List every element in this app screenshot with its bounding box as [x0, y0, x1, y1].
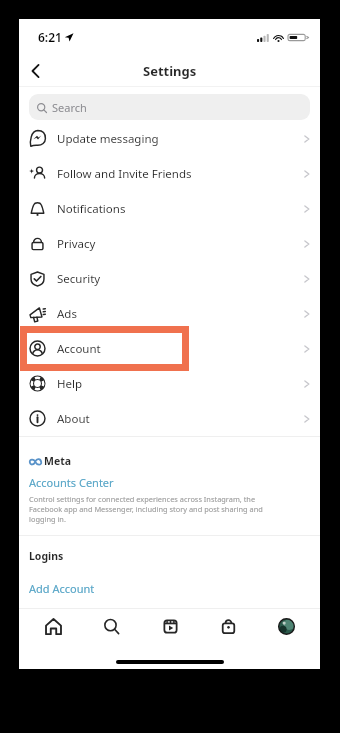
- staticText: Account: [57, 341, 101, 357]
- staticText: Control settings for connected experienc…: [29, 494, 286, 524]
- staticText: Update messaging: [57, 131, 159, 147]
- button[interactable]: Help: [19, 366, 320, 401]
- staticText: Logins: [29, 549, 64, 563]
- staticText: Follow and Invite Friends: [57, 166, 192, 182]
- staticText: About: [57, 411, 90, 427]
- staticText: Help: [57, 376, 83, 392]
- staticText: Search: [52, 100, 87, 115]
- button[interactable]: Search: [29, 94, 310, 120]
- button[interactable]: Follow and Invite Friends: [19, 156, 320, 191]
- button[interactable]: Back: [19, 55, 53, 86]
- button[interactable]: Ads: [19, 296, 320, 331]
- staticText: Settings: [143, 62, 197, 80]
- staticText: Meta: [44, 454, 72, 468]
- staticText: 6:21: [38, 29, 62, 45]
- staticText: Security: [57, 271, 101, 287]
- button[interactable]: Home: [29, 609, 77, 644]
- button[interactable]: About: [19, 401, 320, 436]
- button[interactable]: Account: [19, 331, 320, 366]
- button[interactable]: Reels: [146, 609, 194, 644]
- button[interactable]: Update messaging: [19, 121, 320, 156]
- button[interactable]: Accounts Center: [29, 475, 114, 490]
- button[interactable]: Security: [19, 261, 320, 296]
- staticText: Privacy: [57, 236, 96, 252]
- button[interactable]: Search: [87, 609, 135, 644]
- button[interactable]: Notifications: [19, 191, 320, 226]
- staticText: Notifications: [57, 201, 126, 217]
- staticText: Ads: [57, 306, 77, 322]
- button[interactable]: Add Account: [29, 581, 95, 596]
- button[interactable]: Privacy: [19, 226, 320, 261]
- button[interactable]: Shop: [204, 609, 252, 644]
- button[interactable]: Profile: [262, 609, 310, 644]
